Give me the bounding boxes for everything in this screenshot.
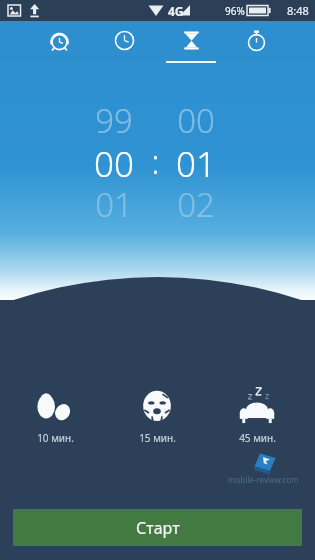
staticText: 45 мин. — [239, 431, 276, 445]
button[interactable]: Stopwatch — [228, 21, 284, 71]
button[interactable]: Alarm — [31, 21, 87, 71]
button[interactable]: World clock — [96, 21, 152, 71]
staticText: Старт — [136, 517, 180, 539]
button[interactable]: Timer — [163, 21, 219, 71]
button[interactable]: 45 мин. — [213, 382, 301, 445]
staticText: 01 — [176, 140, 216, 188]
button[interactable]: Seconds — [156, 138, 236, 180]
staticText: 4G — [168, 3, 184, 19]
staticText: 99 — [95, 98, 133, 143]
staticText: 15 мин. — [139, 431, 176, 445]
staticText: mobile-review.com — [228, 474, 299, 485]
staticText: 01 — [95, 182, 133, 227]
button[interactable]: Старт — [13, 509, 302, 546]
staticText: 96% — [225, 4, 245, 18]
staticText: 00 — [94, 140, 134, 188]
button[interactable]: Minutes — [74, 138, 154, 180]
staticText: : — [151, 139, 160, 184]
button[interactable]: 10 мин. — [11, 382, 99, 445]
staticText: 02 — [177, 182, 215, 227]
staticText: 8:48 — [287, 3, 309, 18]
button[interactable]: 15 мин. — [113, 382, 201, 445]
staticText: 10 мин. — [37, 431, 74, 445]
staticText: 00 — [177, 98, 215, 143]
